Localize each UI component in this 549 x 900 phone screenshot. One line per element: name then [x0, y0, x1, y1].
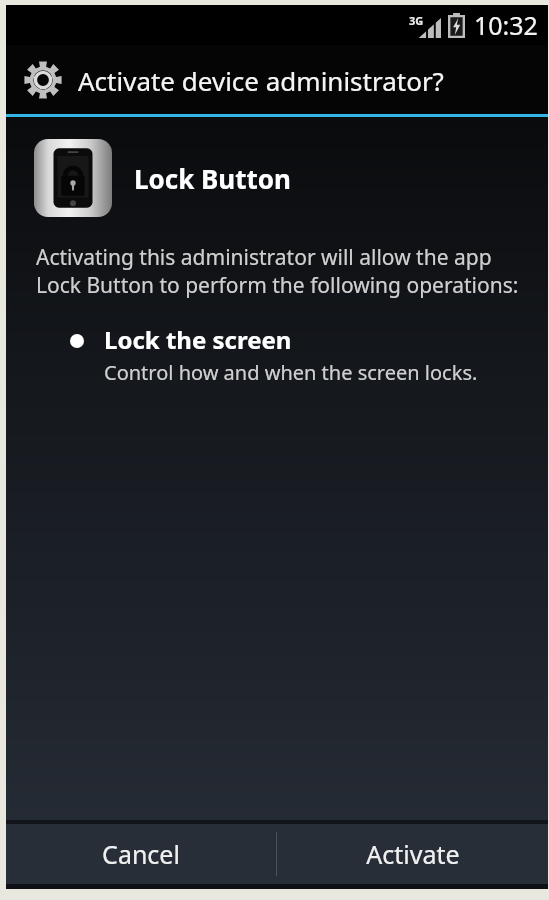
staticText: Control how and when the screen locks.: [104, 359, 478, 386]
staticText: 3G: [409, 13, 424, 28]
staticText: Lock the screen: [104, 323, 292, 356]
staticText: Activate: [366, 837, 460, 871]
staticText: Activate device administrator?: [78, 63, 444, 98]
staticText: Cancel: [102, 837, 180, 871]
button[interactable]: Activate: [277, 824, 548, 884]
staticText: 10:32: [474, 8, 538, 42]
staticText: Lock Button: [134, 161, 291, 196]
button[interactable]: Cancel: [6, 824, 276, 884]
staticText: Activating this administrator will allow…: [36, 243, 519, 299]
other: Device administrator: [24, 61, 62, 99]
